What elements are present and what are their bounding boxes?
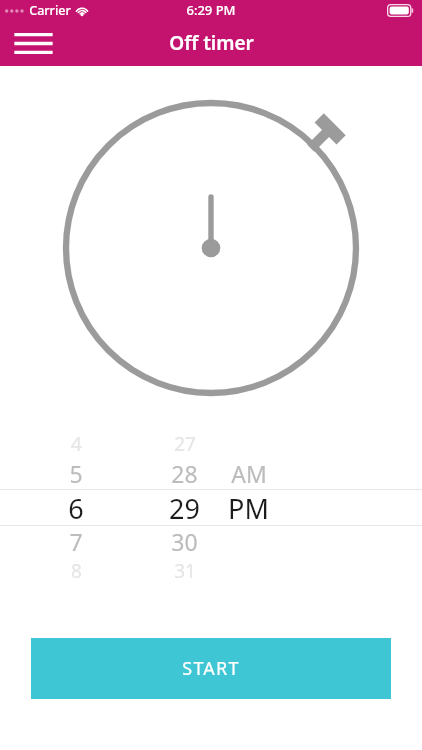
staticText: 27 bbox=[174, 431, 196, 457]
button[interactable]: Open navigation menu bbox=[9, 22, 57, 64]
staticText: 6 bbox=[68, 490, 84, 525]
staticText: 29 bbox=[169, 490, 200, 525]
staticText: 5 bbox=[69, 458, 83, 489]
staticText: 4 bbox=[71, 431, 82, 457]
staticText: 8 bbox=[71, 558, 82, 584]
button[interactable]: 5 bbox=[0, 458, 422, 489]
staticText: Off timer bbox=[169, 30, 254, 56]
staticText: 31 bbox=[174, 558, 196, 584]
staticText: AM bbox=[231, 458, 267, 489]
staticText: 7 bbox=[69, 526, 83, 557]
staticText: 28 bbox=[171, 458, 198, 489]
staticText: 6:29 PM bbox=[186, 1, 236, 19]
staticText: PM bbox=[228, 490, 269, 525]
button[interactable]: 7 bbox=[0, 526, 422, 557]
button[interactable]: START bbox=[31, 638, 391, 699]
staticText: Carrier bbox=[29, 2, 71, 19]
staticText: 30 bbox=[171, 526, 198, 557]
button[interactable]: 6 bbox=[0, 490, 422, 525]
staticText: START bbox=[182, 656, 240, 681]
